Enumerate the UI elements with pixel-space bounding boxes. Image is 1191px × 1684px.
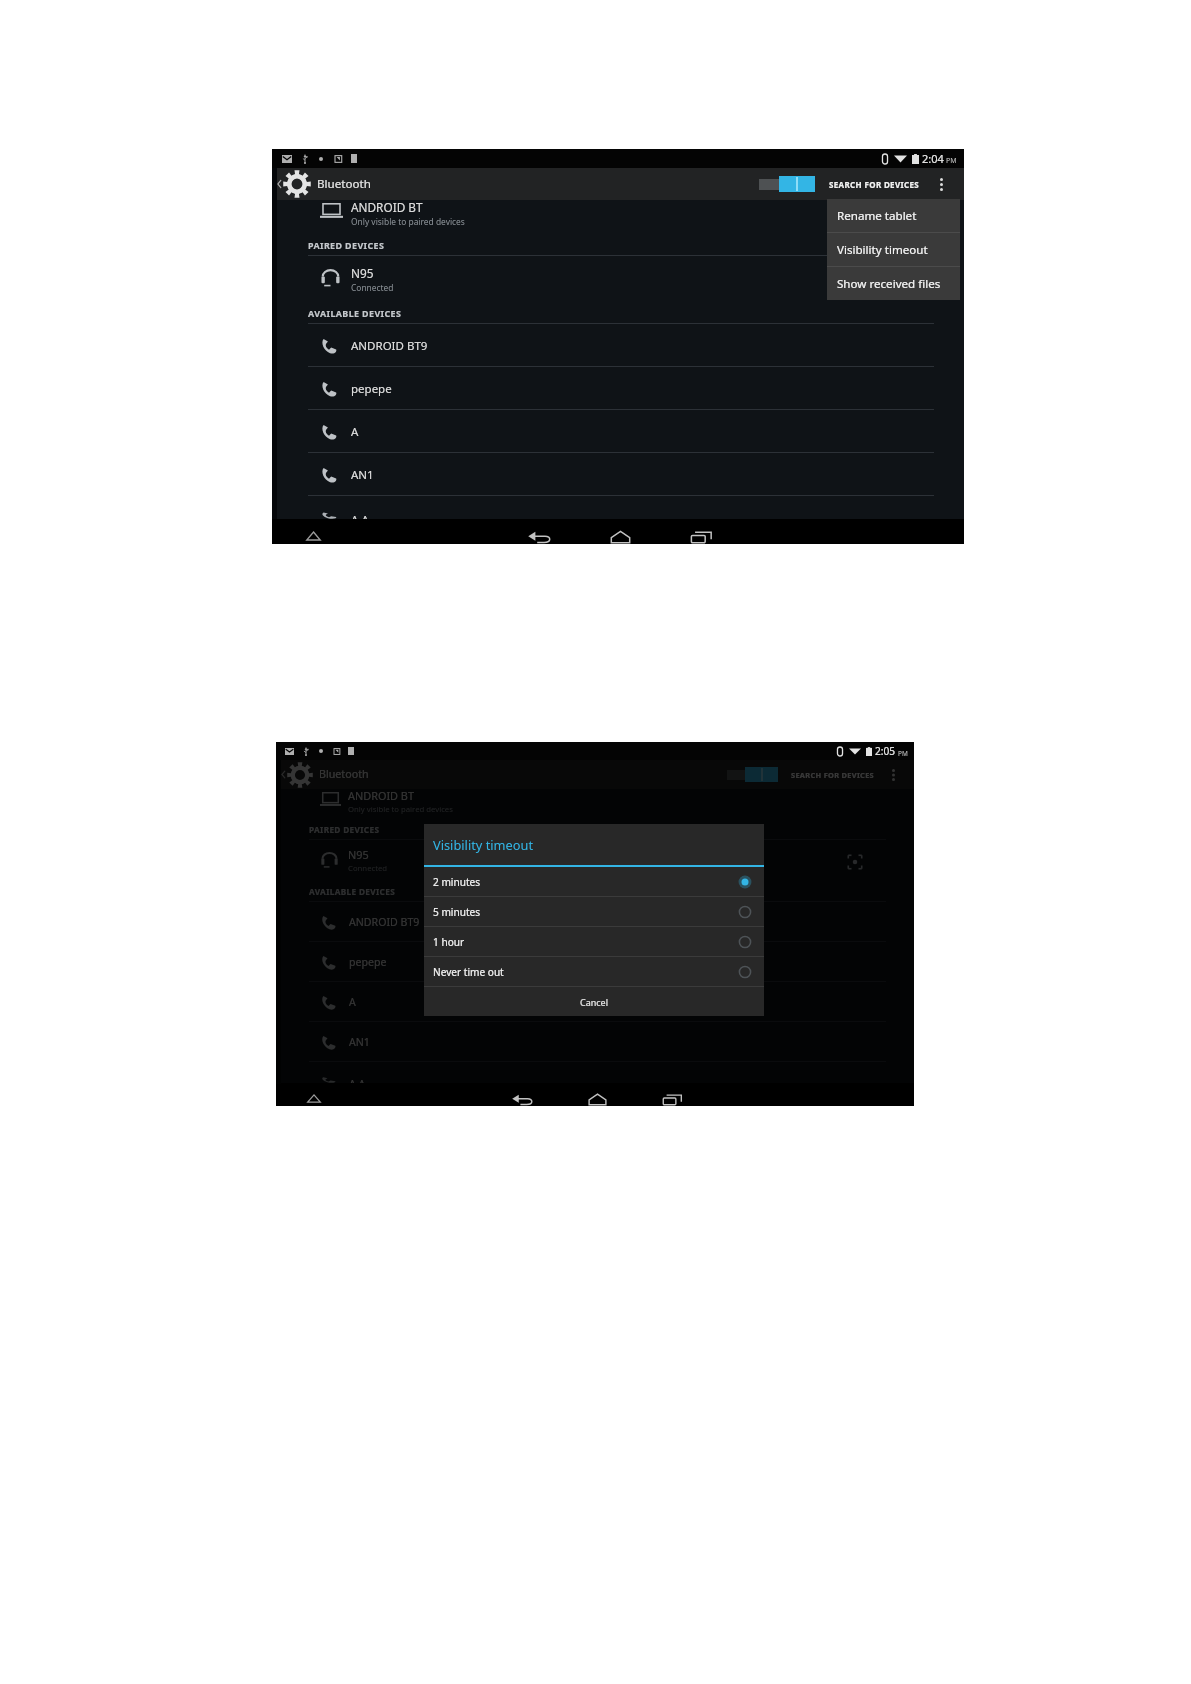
staticText: N95 bbox=[348, 847, 369, 862]
button[interactable]: A.A bbox=[272, 496, 964, 519]
staticText: AVAILABLE DEVICES bbox=[309, 886, 396, 897]
staticText: PM bbox=[946, 156, 957, 166]
button[interactable]: Rename tablet bbox=[827, 199, 960, 232]
staticText: 1 hour bbox=[433, 935, 465, 949]
button[interactable]: pepepe bbox=[276, 942, 914, 982]
staticText: A.A bbox=[349, 1077, 366, 1083]
staticText: Bluetooth bbox=[319, 767, 369, 782]
button[interactable]: Bluetooth bbox=[276, 760, 375, 789]
button[interactable]: Visibility timeout bbox=[827, 233, 960, 266]
staticText: A.A bbox=[351, 512, 369, 519]
button[interactable]: Recents bbox=[657, 1092, 687, 1105]
staticText: AN1 bbox=[349, 1035, 370, 1049]
button[interactable]: SEARCH FOR DEVICES bbox=[829, 168, 920, 200]
staticText: PAIRED DEVICES bbox=[308, 239, 385, 251]
staticText: PAIRED DEVICES bbox=[309, 824, 380, 835]
staticText: 2 minutes bbox=[433, 875, 481, 889]
staticText: A bbox=[351, 424, 359, 440]
button[interactable]: Recents bbox=[685, 529, 717, 543]
button[interactable]: SEARCH FOR DEVICES bbox=[791, 760, 874, 789]
button[interactable]: More options bbox=[885, 760, 902, 789]
staticText: Connected bbox=[348, 863, 388, 874]
button[interactable]: Bluetooth on bbox=[759, 168, 815, 200]
staticText: ANDROID BT9 bbox=[351, 338, 428, 354]
button[interactable]: Home bbox=[604, 529, 636, 543]
staticText: Visibility timeout bbox=[837, 242, 928, 258]
staticText: ANDROID BT bbox=[348, 788, 414, 803]
button[interactable]: More options bbox=[932, 168, 951, 200]
staticText: AN1 bbox=[351, 467, 374, 483]
staticText: Visibility timeout bbox=[433, 836, 534, 853]
button[interactable]: 2 minutes bbox=[424, 867, 764, 896]
staticText: Show received files bbox=[837, 276, 941, 292]
staticText: AVAILABLE DEVICES bbox=[308, 307, 402, 319]
staticText: SEARCH FOR DEVICES bbox=[791, 770, 874, 780]
button[interactable]: A bbox=[272, 410, 964, 453]
button[interactable]: Cancel bbox=[424, 987, 764, 1016]
staticText: 2:05 bbox=[875, 744, 896, 758]
button[interactable]: ANDROID BT9 bbox=[276, 902, 914, 942]
button[interactable]: Never time out bbox=[424, 957, 764, 986]
button[interactable]: ANDROID BT bbox=[276, 788, 914, 821]
button[interactable]: AN1 bbox=[272, 453, 964, 496]
button[interactable]: 5 minutes bbox=[424, 897, 764, 926]
button[interactable]: AN1 bbox=[276, 1022, 914, 1062]
button[interactable]: Show navigation bbox=[302, 530, 324, 542]
button[interactable]: Back bbox=[523, 529, 555, 543]
staticText: PM bbox=[898, 749, 908, 758]
button[interactable]: Show received files bbox=[827, 267, 960, 300]
staticText: pepepe bbox=[351, 381, 392, 397]
staticText: Rename tablet bbox=[837, 208, 917, 224]
staticText: Only visible to paired devices bbox=[351, 216, 465, 227]
staticText: 5 minutes bbox=[433, 905, 481, 919]
button[interactable]: Show navigation bbox=[304, 1093, 324, 1104]
staticText: A bbox=[349, 995, 356, 1009]
staticText: ANDROID BT bbox=[351, 199, 423, 215]
button[interactable]: Bluetooth on bbox=[727, 760, 778, 789]
staticText: Bluetooth bbox=[317, 176, 371, 192]
button[interactable]: 1 hour bbox=[424, 927, 764, 956]
button[interactable]: Home bbox=[582, 1092, 612, 1105]
staticText: 2:04 bbox=[922, 151, 944, 166]
staticText: Cancel bbox=[580, 996, 609, 1008]
staticText: Only visible to paired devices bbox=[348, 804, 453, 815]
button[interactable]: ANDROID BT9 bbox=[272, 324, 964, 367]
button[interactable]: Back bbox=[507, 1092, 537, 1105]
button[interactable]: Device settings bbox=[847, 854, 863, 870]
staticText: SEARCH FOR DEVICES bbox=[829, 179, 920, 190]
button[interactable]: A bbox=[276, 982, 914, 1022]
staticText: N95 bbox=[351, 265, 374, 281]
staticText: pepepe bbox=[349, 955, 387, 969]
staticText: Connected bbox=[351, 282, 394, 293]
button[interactable]: pepepe bbox=[272, 367, 964, 410]
staticText: ANDROID BT9 bbox=[349, 915, 420, 929]
button[interactable]: Bluetooth bbox=[272, 168, 377, 200]
button[interactable]: ANDROID BT bbox=[272, 199, 964, 235]
button[interactable]: N95 bbox=[272, 256, 964, 301]
button[interactable]: N95 bbox=[276, 840, 914, 881]
staticText: Never time out bbox=[433, 965, 504, 979]
